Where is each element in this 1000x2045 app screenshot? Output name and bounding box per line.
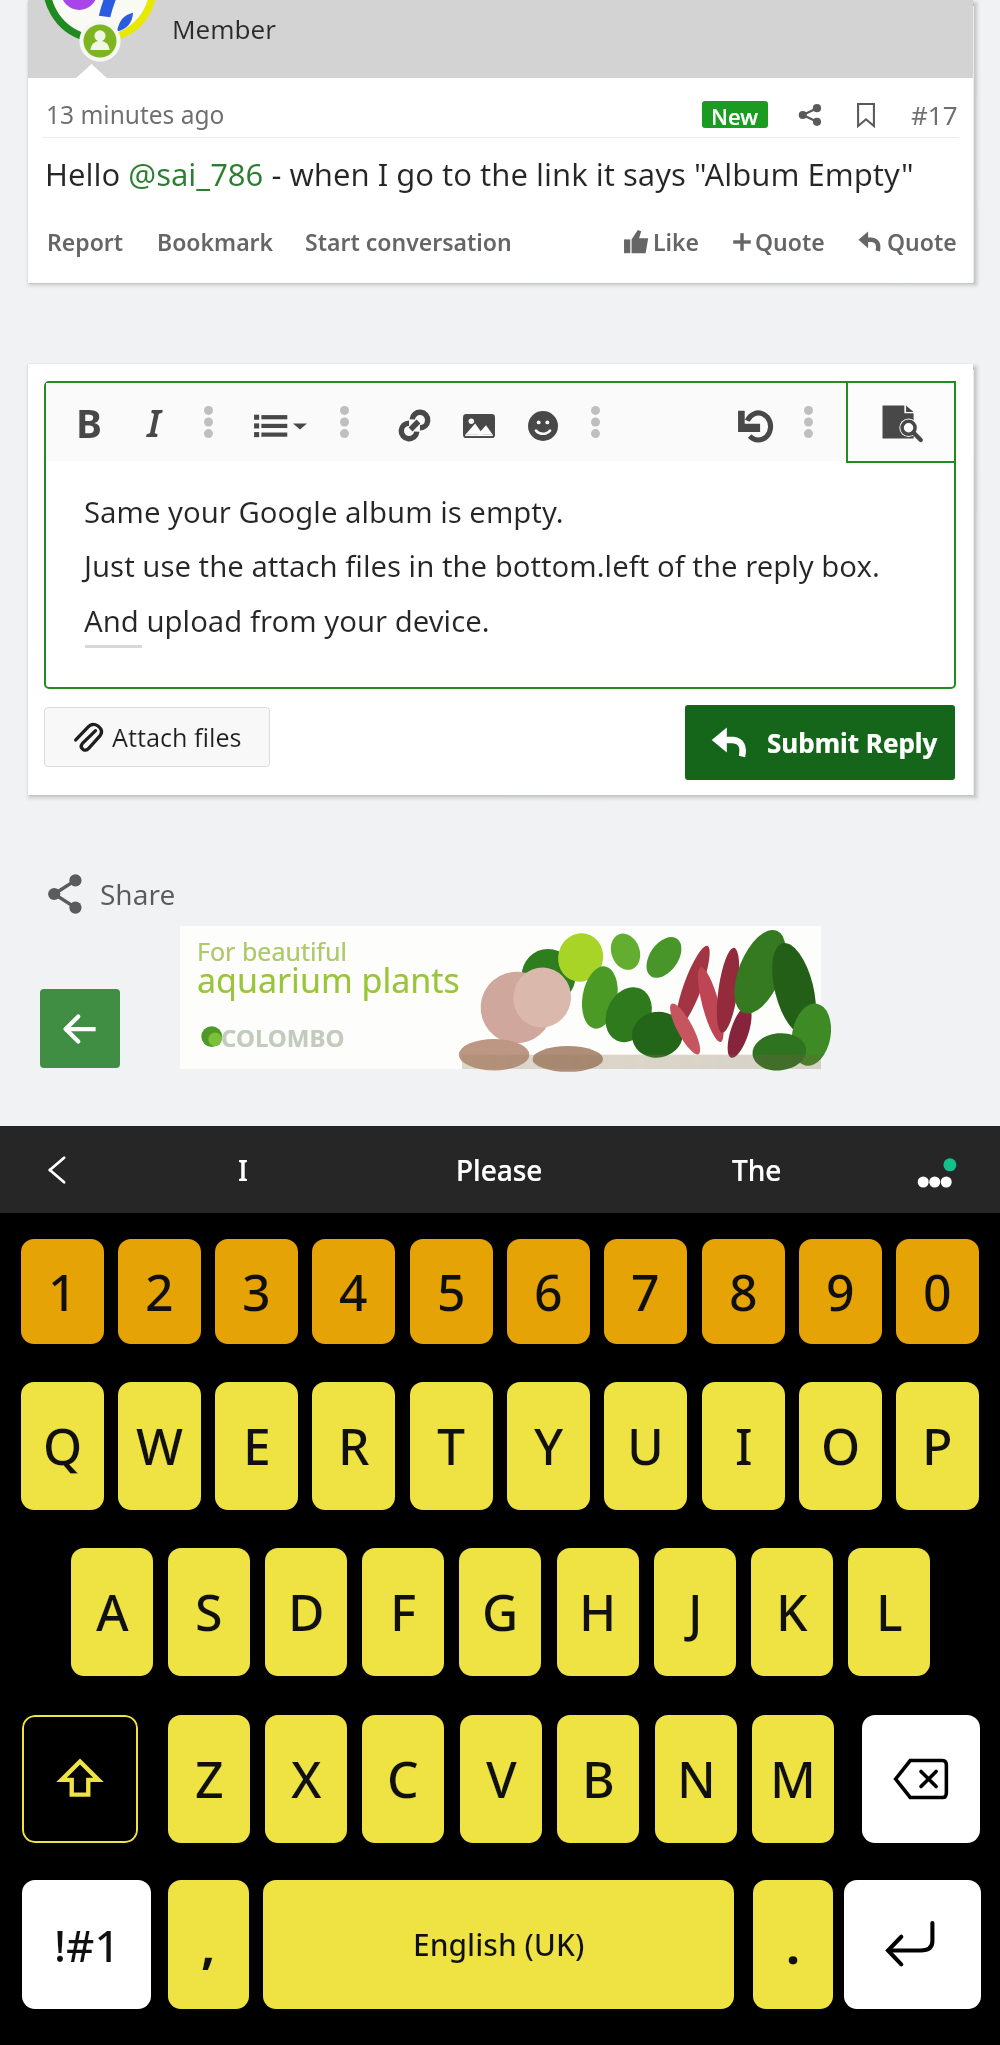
button[interactable]: 6 <box>507 1239 590 1344</box>
button[interactable]: Share <box>798 96 822 134</box>
staticText: E <box>243 1412 271 1480</box>
staticText: I <box>147 396 161 448</box>
button[interactable]: I <box>702 1382 785 1510</box>
button[interactable]: Back <box>0 1126 115 1213</box>
button[interactable]: Q <box>21 1382 104 1510</box>
button[interactable]: D <box>265 1548 347 1676</box>
staticText: English (UK) <box>413 1924 585 1965</box>
button[interactable]: New <box>702 101 768 128</box>
button[interactable]: Shift <box>22 1715 138 1843</box>
button[interactable]: B <box>72 396 106 448</box>
button[interactable]: E <box>215 1382 298 1510</box>
staticText: T <box>437 1412 466 1480</box>
button[interactable]: The <box>628 1126 885 1213</box>
staticText: N <box>677 1745 716 1813</box>
button[interactable]: 9 <box>799 1239 882 1344</box>
button[interactable]: T <box>410 1382 493 1510</box>
button[interactable]: , <box>168 1880 249 2009</box>
button[interactable]: !#1 <box>22 1880 151 2009</box>
button[interactable]: 4 <box>312 1239 395 1344</box>
button[interactable]: G <box>459 1548 541 1676</box>
button[interactable]: H <box>557 1548 639 1676</box>
button[interactable]: Bookmark <box>857 96 875 134</box>
button[interactable]: Submit Reply <box>685 705 955 780</box>
button[interactable]: Enter <box>844 1880 981 2009</box>
staticText: M <box>770 1745 816 1813</box>
button[interactable]: 3 <box>215 1239 298 1344</box>
button[interactable]: More options <box>885 1126 1000 1213</box>
staticText: D <box>288 1578 325 1646</box>
button[interactable]: Attach files <box>44 707 270 767</box>
button[interactable]: L <box>848 1548 930 1676</box>
staticText: U <box>627 1412 664 1480</box>
staticText: V <box>486 1745 517 1813</box>
button[interactable]: . <box>753 1880 833 2009</box>
staticText: Share <box>100 875 176 913</box>
staticText: B <box>582 1745 615 1813</box>
button[interactable]: O <box>799 1382 882 1510</box>
button[interactable]: Insert emoji <box>528 411 558 441</box>
button[interactable]: Insert link <box>398 409 431 442</box>
button[interactable]: Y <box>507 1382 590 1510</box>
staticText: 13 minutes ago <box>46 98 225 131</box>
button[interactable]: Z <box>168 1715 250 1843</box>
button[interactable]: Preview <box>846 381 956 463</box>
button[interactable]: Quote <box>858 226 957 257</box>
staticText: The <box>732 1151 782 1189</box>
button[interactable]: Start conversation <box>305 226 512 257</box>
staticText: !#1 <box>54 1915 120 1975</box>
button[interactable]: 8 <box>702 1239 785 1344</box>
button[interactable]: Please <box>371 1126 628 1213</box>
button[interactable]: Undo <box>737 409 772 442</box>
button[interactable]: U <box>604 1382 687 1510</box>
button[interactable]: Bookmark <box>157 226 274 257</box>
button[interactable]: English (UK) <box>263 1880 734 2009</box>
staticText: COLOMBO <box>221 1021 345 1054</box>
button[interactable]: B <box>557 1715 639 1843</box>
button[interactable]: Bullet list <box>253 412 307 441</box>
button[interactable]: P <box>896 1382 979 1510</box>
button[interactable]: I <box>115 1126 371 1213</box>
button[interactable]: Insert image <box>463 414 495 438</box>
button[interactable]: Share <box>47 866 176 922</box>
button[interactable]: S <box>168 1548 250 1676</box>
button[interactable]: F <box>362 1548 444 1676</box>
staticText: Please <box>456 1151 543 1189</box>
staticText: H <box>579 1578 617 1646</box>
button[interactable]: Like <box>623 226 700 257</box>
button[interactable]: Report <box>47 226 124 257</box>
button[interactable]: X <box>265 1715 347 1843</box>
button[interactable]: Backspace <box>862 1715 980 1843</box>
staticText: Just use the attach files in the bottom.… <box>84 546 880 586</box>
staticText: Attach files <box>112 720 242 754</box>
staticText: And upload from your device. <box>84 601 490 641</box>
staticText: Z <box>195 1745 224 1813</box>
button[interactable]: A <box>71 1548 153 1676</box>
button[interactable]: R <box>312 1382 395 1510</box>
staticText: J <box>688 1578 703 1646</box>
button[interactable]: 2 <box>118 1239 201 1344</box>
button[interactable]: 0 <box>896 1239 979 1344</box>
staticText: . <box>786 1911 801 1979</box>
button[interactable]: V <box>460 1715 542 1843</box>
button[interactable]: Advertisement <box>180 926 821 1069</box>
button[interactable]: Quote <box>731 226 825 257</box>
button[interactable]: Back <box>40 989 120 1068</box>
button[interactable]: J <box>654 1548 736 1676</box>
button[interactable]: W <box>118 1382 201 1510</box>
staticText: , <box>201 1911 216 1979</box>
staticText: 3 <box>242 1258 271 1326</box>
button[interactable]: I <box>138 396 170 448</box>
staticText: 0 <box>923 1258 952 1326</box>
button[interactable]: 5 <box>410 1239 493 1344</box>
button[interactable]: N <box>655 1715 737 1843</box>
staticText: aquarium plants <box>197 957 460 1003</box>
staticText: Quote <box>755 226 825 257</box>
button[interactable]: K <box>751 1548 833 1676</box>
staticText: X <box>291 1745 322 1813</box>
button[interactable]: 1 <box>21 1239 104 1344</box>
button[interactable]: C <box>362 1715 444 1843</box>
staticText: Hello @sai_786 - when I go to the link i… <box>45 153 914 195</box>
button[interactable]: 7 <box>604 1239 687 1344</box>
button[interactable]: M <box>752 1715 834 1843</box>
